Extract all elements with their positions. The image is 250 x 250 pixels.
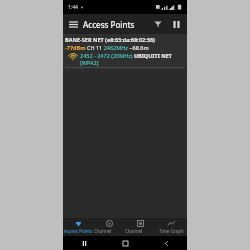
button[interactable]: Recent apps <box>63 236 105 250</box>
button[interactable]: Channel Rating <box>94 218 125 236</box>
staticText: Channel Rating <box>94 228 125 234</box>
button[interactable]: Pause scanning <box>167 15 185 33</box>
staticText: -77dBm CH 11 2462MHz ~68.6m <box>65 44 149 51</box>
staticText: BANE-SER NET (e8:63:da:68:02:36) <box>65 36 155 43</box>
staticText: Access Points <box>64 228 93 234</box>
button[interactable]: BANE-SER NET (e8:63:da:68:02:36) <box>63 34 187 69</box>
button[interactable]: Access Points <box>63 218 94 236</box>
staticText: Access Points <box>83 19 135 30</box>
staticText: 1:44 <box>68 4 78 11</box>
button[interactable]: Home <box>105 236 146 250</box>
staticText: [WPA2] <box>80 59 99 66</box>
button[interactable]: Channel Graph <box>125 218 156 236</box>
staticText: Channel Graph <box>125 228 156 234</box>
button[interactable]: Time Graph <box>156 218 187 236</box>
button[interactable]: Open navigation menu <box>63 14 83 34</box>
button[interactable]: Back <box>146 236 187 250</box>
staticText: Time Graph <box>159 228 184 234</box>
button[interactable]: Filter <box>149 15 167 33</box>
staticText: 2452 - 2472 (20MHz) UBIQUITI NET <box>80 52 172 59</box>
